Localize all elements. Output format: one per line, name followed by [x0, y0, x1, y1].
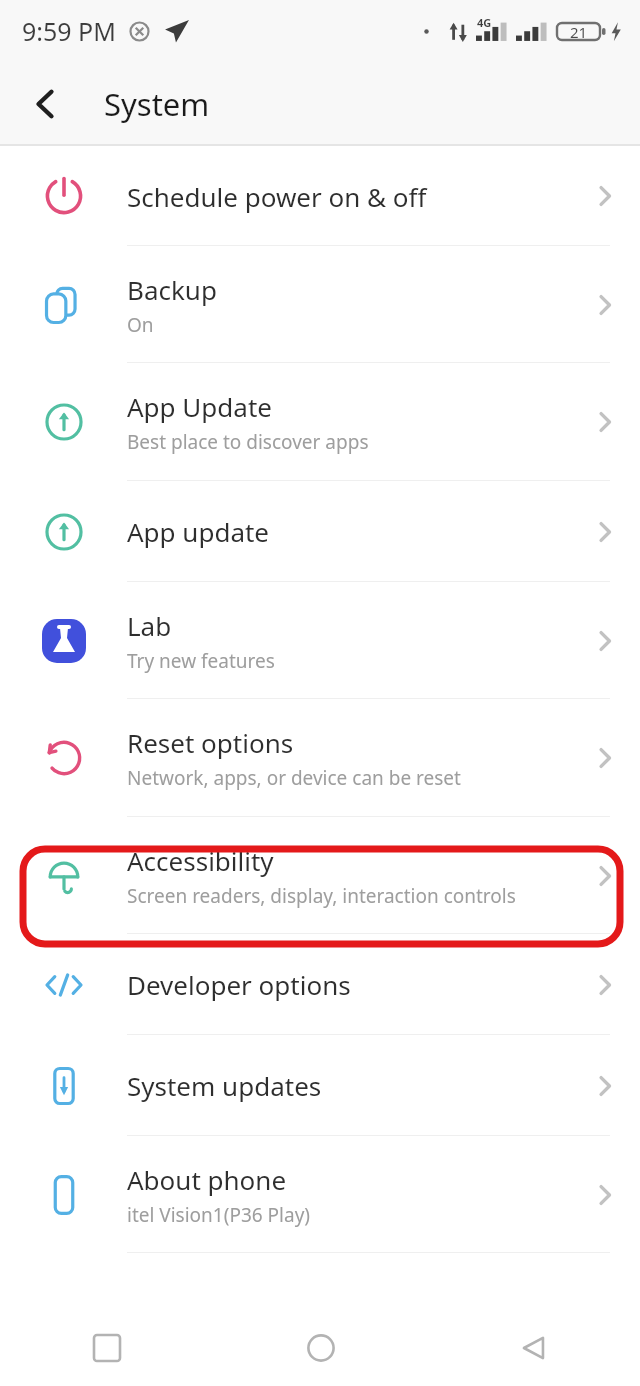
- button[interactable]: Lab: [0, 582, 640, 699]
- staticText: Developer options: [127, 967, 351, 1002]
- button[interactable]: Backup: [0, 246, 640, 363]
- button[interactable]: App update: [0, 481, 640, 582]
- staticText: Network, apps, or device can be reset: [127, 765, 461, 791]
- staticText: 21: [570, 22, 588, 42]
- staticText: 4G: [477, 15, 492, 30]
- button[interactable]: System updates: [0, 1035, 640, 1136]
- staticText: Screen readers, display, interaction con…: [127, 883, 516, 909]
- staticText: itel Vision1(P36 Play): [127, 1202, 311, 1228]
- button[interactable]: Recent apps: [0, 1310, 214, 1386]
- staticText: Try new features: [127, 648, 275, 674]
- button[interactable]: Back: [18, 76, 74, 132]
- button[interactable]: Home: [214, 1310, 427, 1386]
- staticText: Lab: [127, 608, 172, 643]
- staticText: System updates: [127, 1068, 322, 1103]
- button[interactable]: Back: [427, 1310, 640, 1386]
- staticText: Best place to discover apps: [127, 429, 369, 455]
- staticText: 9:59 PM: [22, 14, 116, 48]
- button[interactable]: Developer options: [0, 934, 640, 1035]
- staticText: Accessibility: [127, 843, 274, 878]
- button[interactable]: App Update: [0, 363, 640, 481]
- staticText: System: [104, 83, 210, 125]
- staticText: On: [127, 312, 154, 338]
- staticText: Backup: [127, 272, 217, 307]
- button[interactable]: Accessibility: [0, 817, 640, 934]
- staticText: App Update: [127, 389, 272, 424]
- staticText: About phone: [127, 1162, 287, 1197]
- button[interactable]: About phone: [0, 1136, 640, 1253]
- staticText: App update: [127, 514, 270, 549]
- button[interactable]: Reset options: [0, 699, 640, 817]
- staticText: Reset options: [127, 725, 294, 760]
- staticText: Schedule power on & off: [127, 179, 427, 214]
- button[interactable]: Schedule power on & off: [0, 146, 640, 246]
